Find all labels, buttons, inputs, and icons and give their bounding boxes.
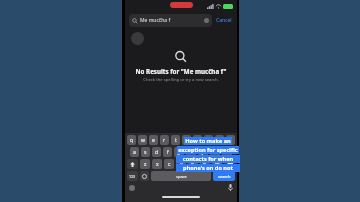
staticText: k: [214, 149, 217, 156]
button[interactable]: i: [204, 135, 213, 145]
staticText: o: [218, 137, 222, 144]
button[interactable]: p: [226, 135, 235, 145]
staticText: f: [167, 149, 169, 156]
button[interactable]: a: [130, 147, 139, 157]
staticText: j: [202, 149, 204, 156]
button[interactable]: Globe: [129, 185, 135, 191]
button[interactable]: space: [151, 171, 211, 181]
button[interactable]: search: [213, 171, 235, 181]
button[interactable]: x: [152, 159, 162, 169]
staticText: Check the spelling or try a new search.: [131, 77, 231, 83]
button[interactable]: k: [210, 147, 220, 157]
button[interactable]: n: [200, 159, 210, 169]
staticText: 123: [129, 174, 136, 179]
staticText: m: [215, 161, 220, 168]
staticText: How to make an: [185, 137, 231, 145]
button[interactable]: c: [164, 159, 174, 169]
button[interactable]: y: [182, 135, 191, 145]
staticText: e: [152, 137, 155, 144]
staticText: t: [175, 137, 177, 144]
button[interactable]: Delete: [224, 159, 235, 169]
button[interactable]: w: [138, 135, 147, 145]
staticText: Cancel: [216, 17, 232, 24]
staticText: Me mucčha f: [140, 17, 204, 24]
button[interactable]: r: [160, 135, 169, 145]
staticText: No Results for "Me mucčha f": [131, 67, 231, 75]
button[interactable]: Cancel: [215, 15, 233, 26]
staticText: phone's on do not disturb: [177, 164, 239, 172]
button[interactable]: Shift: [127, 159, 138, 169]
button[interactable]: j: [198, 147, 208, 157]
button[interactable]: z: [140, 159, 150, 169]
staticText: r: [163, 137, 166, 144]
button[interactable]: t: [171, 135, 180, 145]
button[interactable]: l: [222, 147, 232, 157]
staticText: a: [133, 149, 136, 156]
staticText: c: [168, 161, 171, 168]
staticText: p: [229, 137, 233, 144]
staticText: space: [176, 174, 187, 179]
button[interactable]: h: [186, 147, 196, 157]
staticText: l: [226, 149, 228, 156]
button[interactable]: Emoji: [140, 171, 149, 181]
button[interactable]: Me mucčha f: [129, 14, 212, 27]
button[interactable]: g: [174, 147, 184, 157]
staticText: v: [180, 161, 183, 168]
staticText: n: [203, 161, 207, 168]
staticText: y: [185, 137, 188, 144]
button[interactable]: s: [141, 147, 150, 157]
button[interactable]: d: [152, 147, 161, 157]
staticText: w: [141, 137, 145, 144]
button[interactable]: e: [149, 135, 158, 145]
staticText: z: [144, 161, 147, 168]
staticText: exception for specific: [178, 146, 238, 154]
button[interactable]: 123: [127, 171, 138, 181]
staticText: h: [189, 149, 193, 156]
button[interactable]: v: [176, 159, 186, 169]
staticText: q: [130, 137, 134, 144]
button[interactable]: Contact avatar: [131, 32, 144, 45]
button[interactable]: q: [127, 135, 136, 145]
button[interactable]: m: [212, 159, 222, 169]
staticText: contacts for when your: [177, 155, 239, 163]
staticText: search: [218, 174, 231, 179]
staticText: s: [144, 149, 147, 156]
staticText: d: [155, 149, 159, 156]
button[interactable]: o: [215, 135, 224, 145]
staticText: u: [196, 137, 200, 144]
button[interactable]: Dictation: [228, 184, 233, 191]
staticText: b: [191, 161, 195, 168]
button[interactable]: u: [193, 135, 202, 145]
button[interactable]: b: [188, 159, 198, 169]
staticText: i: [208, 137, 210, 144]
staticText: x: [156, 161, 159, 168]
staticText: g: [177, 149, 181, 156]
button[interactable]: Clear search: [204, 18, 209, 23]
button[interactable]: f: [163, 147, 172, 157]
